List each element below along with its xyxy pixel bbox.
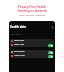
- button[interactable]: Cloud sync: [10, 50, 54, 54]
- button[interactable]: Toggle setting: [48, 51, 53, 54]
- button[interactable]: Toggle setting: [48, 55, 53, 58]
- staticText: Share stats: [14, 54, 25, 57]
- button[interactable]: Sleep data: [10, 43, 54, 47]
- staticText: Heart rate: [14, 39, 25, 42]
- button[interactable]: More options: [51, 26, 54, 29]
- staticText: Privacy-First Health Tracking on Android: [3, 5, 61, 12]
- button[interactable]: Heart rate: [10, 39, 54, 43]
- staticText: Cloud sync: [14, 50, 25, 53]
- staticText: PERMISSIONS: [10, 33, 22, 35]
- staticText: Health Connect · Compose: [0, 14, 64, 17]
- staticText: Health data: [10, 25, 26, 29]
- button[interactable]: Share stats: [10, 54, 54, 58]
- staticText: Sleep data: [14, 43, 25, 46]
- button[interactable]: Toggle setting: [48, 44, 53, 47]
